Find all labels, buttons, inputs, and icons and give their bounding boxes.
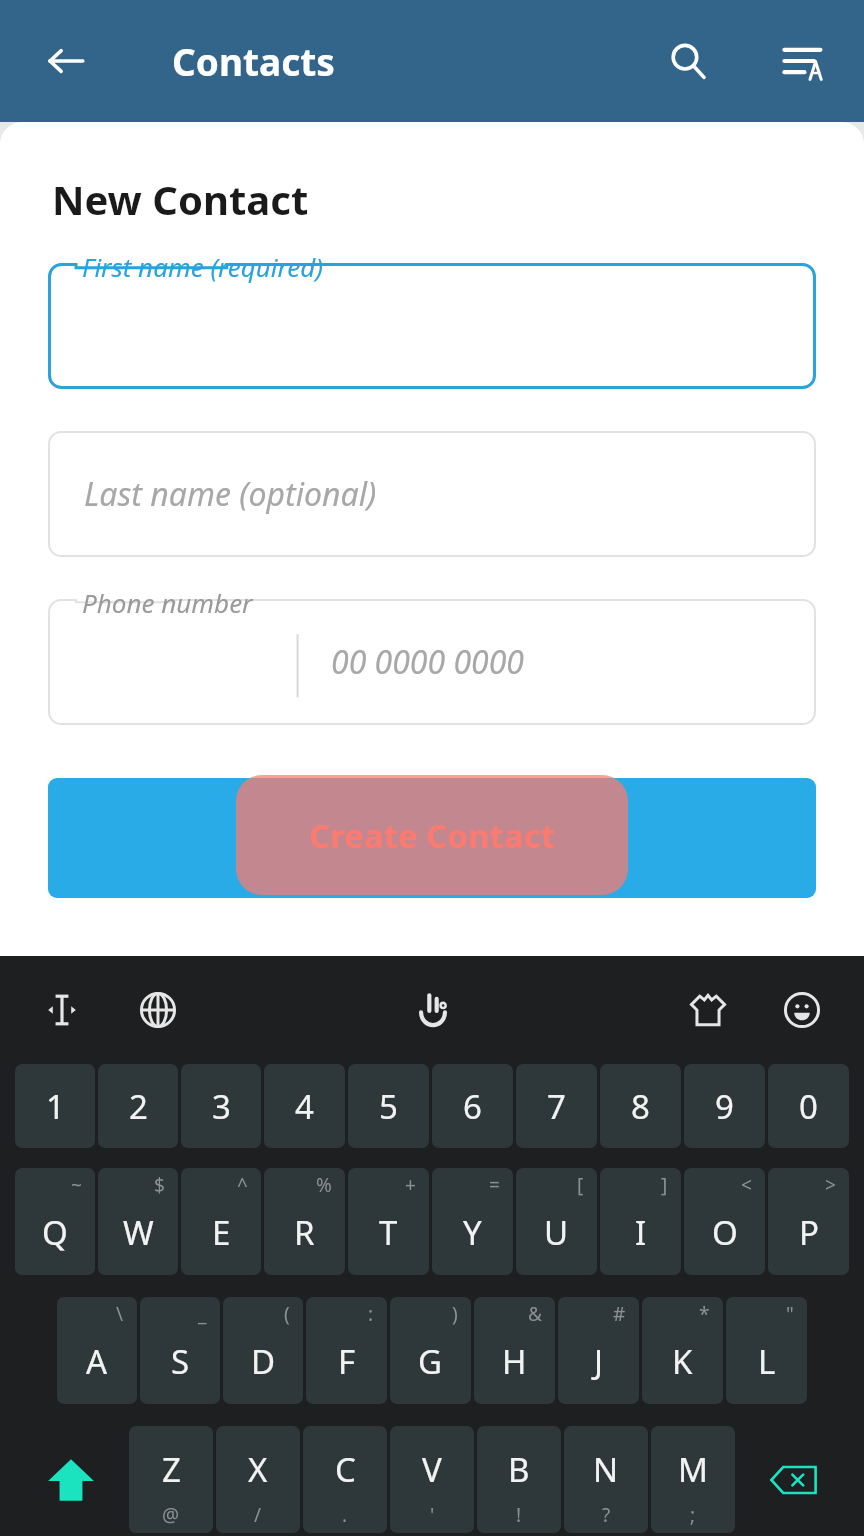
button[interactable]: (: [223, 1297, 303, 1404]
staticText: G: [418, 1339, 443, 1384]
button[interactable]: *: [642, 1297, 723, 1404]
button[interactable]: ~: [15, 1168, 95, 1275]
button[interactable]: Cursor: [26, 974, 98, 1046]
staticText: Create Contact: [309, 813, 556, 858]
button[interactable]: =: [432, 1168, 513, 1275]
button[interactable]: +: [348, 1168, 429, 1275]
button[interactable]: 8: [600, 1064, 681, 1148]
button[interactable]: 1: [15, 1064, 95, 1148]
staticText: W: [123, 1210, 154, 1255]
staticText: S: [171, 1339, 190, 1384]
staticText: 5: [379, 1084, 398, 1129]
staticText: 3: [212, 1084, 231, 1129]
staticText: 00 0000 0000: [331, 640, 524, 684]
button[interactable]: ": [726, 1297, 807, 1404]
staticText: /: [254, 1502, 262, 1528]
staticText: *: [699, 1301, 710, 1327]
button[interactable]: Shift: [15, 1426, 126, 1533]
staticText: F: [338, 1339, 356, 1384]
staticText: ): [452, 1301, 458, 1327]
staticText: [: [577, 1172, 584, 1198]
staticText: 9: [715, 1084, 734, 1129]
staticText: E: [212, 1210, 231, 1255]
button[interactable]: 0: [768, 1064, 849, 1148]
staticText: _: [198, 1301, 207, 1327]
button[interactable]: [48, 778, 816, 898]
staticText: <: [741, 1172, 752, 1198]
staticText: 1: [46, 1084, 65, 1129]
button[interactable]: Phone number: [48, 599, 816, 725]
staticText: X: [248, 1447, 268, 1492]
button[interactable]: Z: [129, 1426, 213, 1533]
button[interactable]: \: [57, 1297, 137, 1404]
staticText: 8: [631, 1084, 650, 1129]
staticText: ]: [661, 1172, 668, 1198]
staticText: 4: [295, 1084, 314, 1129]
button[interactable]: Language: [122, 974, 194, 1046]
staticText: J: [594, 1339, 604, 1384]
staticText: ^: [237, 1172, 248, 1198]
staticText: !: [516, 1502, 522, 1528]
staticText: New Contact: [52, 172, 309, 226]
staticText: Phone number: [82, 585, 253, 620]
button[interactable]: B: [477, 1426, 561, 1533]
button[interactable]: ^: [181, 1168, 261, 1275]
staticText: 2: [129, 1084, 148, 1129]
button[interactable]: ]: [600, 1168, 681, 1275]
button[interactable]: &: [474, 1297, 555, 1404]
button[interactable]: C: [303, 1426, 387, 1533]
staticText: &: [528, 1301, 542, 1327]
button[interactable]: N: [564, 1426, 648, 1533]
button[interactable]: Back: [30, 25, 102, 97]
button[interactable]: 3: [181, 1064, 261, 1148]
button[interactable]: 9: [684, 1064, 765, 1148]
staticText: A: [86, 1339, 108, 1384]
button[interactable]: Search: [650, 23, 726, 99]
button[interactable]: $: [98, 1168, 178, 1275]
button[interactable]: Sort: [764, 23, 840, 99]
button[interactable]: #: [558, 1297, 639, 1404]
button[interactable]: Last name (optional): [48, 431, 816, 557]
button[interactable]: [: [516, 1168, 597, 1275]
button[interactable]: 5: [348, 1064, 429, 1148]
staticText: ': [430, 1502, 435, 1528]
button[interactable]: 7: [516, 1064, 597, 1148]
button[interactable]: M: [651, 1426, 735, 1533]
staticText: L: [758, 1339, 776, 1384]
staticText: .: [342, 1502, 348, 1528]
button[interactable]: Theme: [672, 974, 744, 1046]
button[interactable]: >: [768, 1168, 849, 1275]
staticText: (: [284, 1301, 290, 1327]
button[interactable]: Emoji: [766, 974, 838, 1046]
staticText: #: [613, 1301, 626, 1327]
staticText: M: [678, 1447, 708, 1492]
staticText: \: [116, 1301, 124, 1327]
button[interactable]: <: [684, 1168, 765, 1275]
button[interactable]: 6: [432, 1064, 513, 1148]
button[interactable]: _: [140, 1297, 220, 1404]
staticText: Y: [463, 1210, 482, 1255]
button[interactable]: Backspace: [738, 1426, 849, 1533]
button[interactable]: :: [306, 1297, 387, 1404]
staticText: R: [294, 1210, 315, 1255]
staticText: C: [335, 1447, 356, 1492]
staticText: :: [368, 1301, 374, 1327]
button[interactable]: %: [264, 1168, 345, 1275]
staticText: U: [544, 1210, 569, 1255]
staticText: Last name (optional): [84, 472, 377, 516]
staticText: P: [799, 1210, 819, 1255]
staticText: ?: [602, 1502, 611, 1528]
button[interactable]: First name (required): [48, 263, 816, 389]
staticText: Contacts: [172, 36, 335, 86]
button[interactable]: 2: [98, 1064, 178, 1148]
staticText: ;: [690, 1502, 696, 1528]
staticText: =: [489, 1172, 500, 1198]
button[interactable]: X: [216, 1426, 300, 1533]
button[interactable]: ): [390, 1297, 471, 1404]
button[interactable]: V: [390, 1426, 474, 1533]
button[interactable]: 4: [264, 1064, 345, 1148]
staticText: B: [508, 1447, 530, 1492]
staticText: O: [712, 1210, 738, 1255]
staticText: D: [251, 1339, 276, 1384]
button[interactable]: Gesture: [397, 974, 469, 1046]
